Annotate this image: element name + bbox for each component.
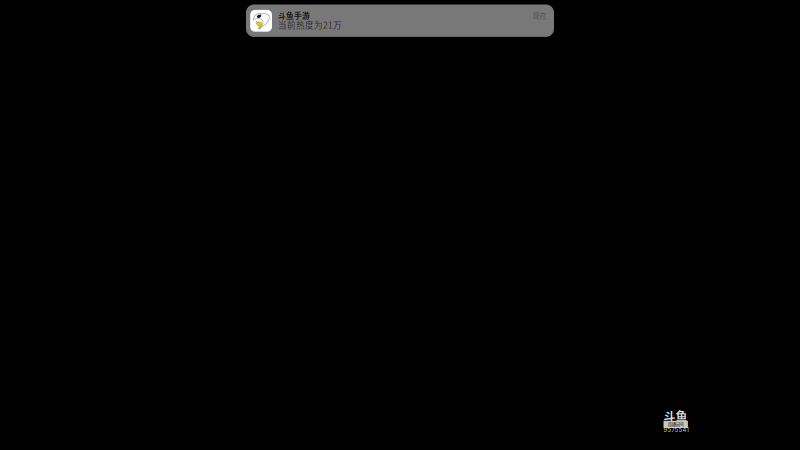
staticText: 直播间号 [668,421,684,428]
staticText: 9575541 [663,426,688,433]
staticText: 现在 [532,10,546,20]
staticText: 斗鱼手游 [278,10,310,21]
staticText: 当前热度为21万 [278,18,342,31]
staticText: 斗鱼 [663,407,687,425]
button[interactable]: 斗鱼手游 [246,4,554,37]
